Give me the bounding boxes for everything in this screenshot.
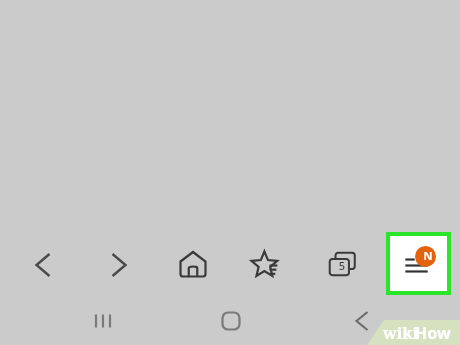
- button[interactable]: Bookmarks: [245, 243, 289, 287]
- staticText: 5: [335, 258, 349, 272]
- button[interactable]: Forward: [97, 243, 141, 287]
- button[interactable]: Tabs, 5 open: [319, 243, 363, 287]
- button[interactable]: Back: [340, 299, 384, 343]
- button[interactable]: Home: [209, 299, 253, 343]
- button[interactable]: Menu: [386, 232, 451, 295]
- staticText: wiki: [383, 322, 419, 344]
- button[interactable]: Home: [171, 243, 215, 287]
- staticText: How: [415, 322, 451, 344]
- button[interactable]: Recent apps: [81, 299, 125, 343]
- staticText: N: [420, 248, 436, 264]
- button[interactable]: Back: [21, 243, 65, 287]
